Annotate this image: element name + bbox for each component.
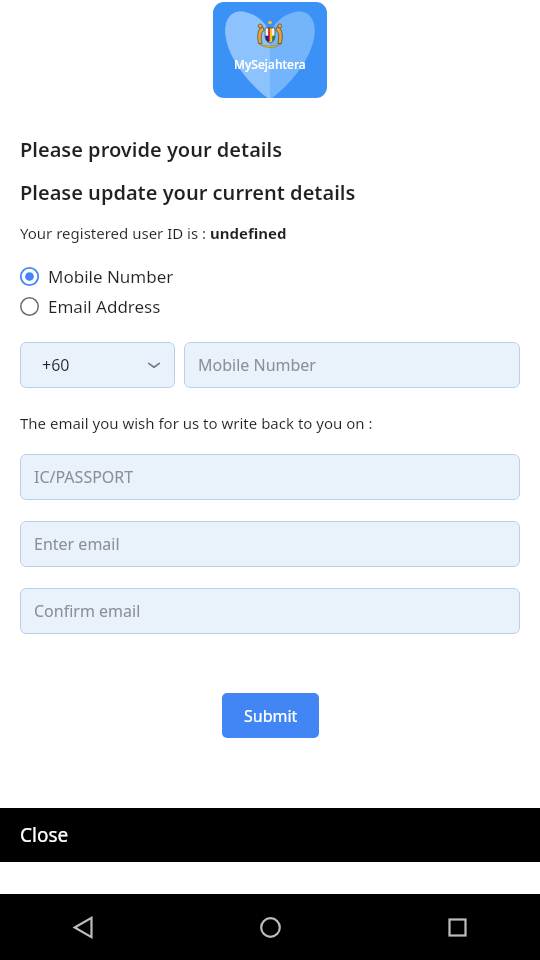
button[interactable]: Enter email (20, 521, 520, 567)
staticText: IC/PASSPORT (34, 466, 134, 488)
staticText: undefined (210, 223, 287, 243)
staticText: The email you wish for us to write back … (20, 413, 373, 433)
staticText: Mobile Number (198, 354, 316, 376)
staticText: Please update your current details (20, 179, 356, 206)
staticText: Confirm email (34, 600, 141, 622)
staticText: Email Address (48, 295, 161, 318)
button[interactable]: Close (0, 808, 540, 862)
staticText: Enter email (34, 533, 120, 555)
button[interactable]: Submit (222, 693, 319, 738)
button[interactable]: Mobile Number (184, 342, 520, 388)
button[interactable]: Recent apps (434, 904, 480, 950)
staticText: +60 (42, 354, 70, 376)
staticText: Submit (244, 705, 298, 727)
button[interactable]: Back (60, 904, 106, 950)
button[interactable]: +60 (20, 342, 175, 388)
staticText: Mobile Number (48, 265, 174, 288)
staticText: Please provide your details (20, 136, 283, 163)
button[interactable]: IC/PASSPORT (20, 454, 520, 500)
button[interactable]: Email Address (20, 295, 161, 318)
button[interactable]: Confirm email (20, 588, 520, 634)
button[interactable]: Home (247, 904, 293, 950)
staticText: Your registered user ID is : (20, 223, 210, 243)
button[interactable]: Mobile Number (20, 265, 174, 288)
staticText: Close (20, 822, 69, 848)
staticText: MySejahtera (234, 56, 306, 72)
